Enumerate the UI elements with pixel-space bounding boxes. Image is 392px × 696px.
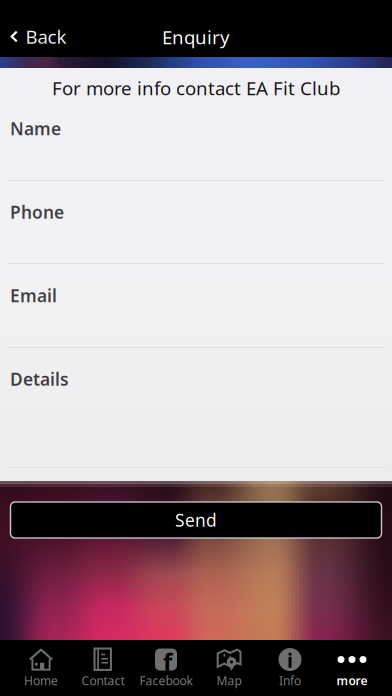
- button[interactable]: Send: [10, 502, 381, 538]
- staticText: Email: [10, 284, 57, 307]
- staticText: Home: [24, 672, 58, 688]
- staticText: Phone: [10, 200, 64, 223]
- staticText: Facebook: [139, 672, 192, 688]
- staticText: more: [336, 672, 367, 688]
- staticText: Name: [10, 117, 61, 140]
- button[interactable]: Home: [10, 642, 72, 694]
- button[interactable]: Facebook: [135, 642, 197, 694]
- staticText: Details: [10, 367, 69, 390]
- staticText: For more info contact EA Fit Club: [52, 76, 340, 100]
- button[interactable]: Back: [0, 14, 76, 59]
- button[interactable]: Map: [198, 642, 260, 694]
- button[interactable]: more: [321, 642, 383, 694]
- button[interactable]: Contact: [72, 642, 134, 694]
- staticText: Info: [279, 672, 301, 688]
- staticText: Enquiry: [162, 25, 230, 49]
- staticText: Send: [175, 508, 217, 531]
- staticText: Back: [25, 24, 66, 49]
- staticText: Contact: [81, 672, 124, 688]
- staticText: f: [163, 646, 172, 677]
- staticText: Map: [216, 672, 241, 688]
- staticText: i: [287, 647, 293, 673]
- button[interactable]: Info: [259, 642, 321, 694]
